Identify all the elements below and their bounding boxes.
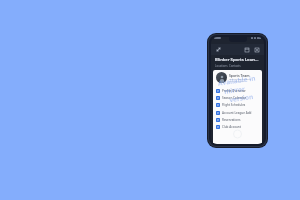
button[interactable]: Flight Schedules (213, 101, 262, 108)
button[interactable]: Sports Team (213, 72, 262, 83)
staticText: Blinker Sports Lounge (215, 57, 260, 63)
staticText: Sports Team (229, 73, 250, 78)
staticText: Club Account (222, 125, 259, 129)
staticText: Flight Schedules (222, 103, 259, 107)
button[interactable]: Club Account (213, 123, 262, 130)
button[interactable]: Season Calendar (213, 94, 262, 101)
staticText: Profile Overview (222, 89, 259, 93)
staticText: Locations Contacts (215, 64, 241, 68)
button[interactable]: Profile Overview (213, 87, 262, 94)
staticText: Account League Add (222, 111, 259, 115)
staticText: version (229, 92, 254, 104)
staticText: Season Calendar (222, 96, 259, 100)
button[interactable]: Close (253, 46, 260, 53)
staticText: Reservations (222, 118, 259, 122)
button[interactable]: Minimize (243, 46, 250, 53)
staticText: Available in (217, 73, 256, 88)
button[interactable]: Account League Add (213, 109, 262, 116)
staticText: mirror (223, 84, 245, 96)
button[interactable]: Expand (215, 46, 222, 53)
button[interactable]: Reservations (213, 116, 262, 123)
